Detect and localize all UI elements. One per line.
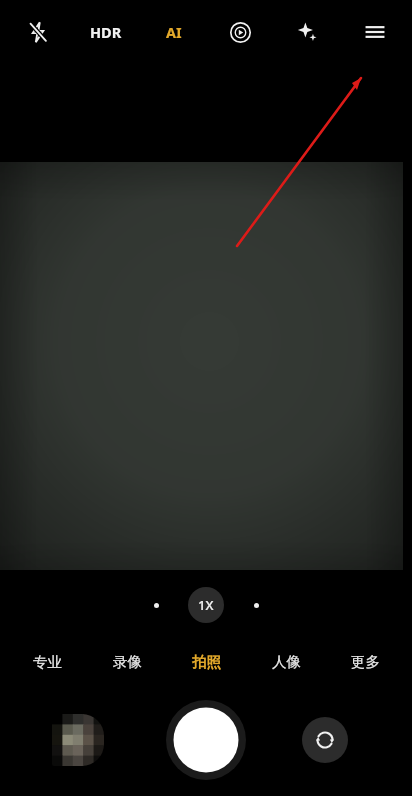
staticText: HDR xyxy=(90,22,122,42)
staticText: 录像 xyxy=(113,653,142,671)
button[interactable]: 1X xyxy=(188,587,224,623)
staticText: 1X xyxy=(198,596,214,614)
staticText: 拍照 xyxy=(192,653,221,671)
staticText: 更多 xyxy=(351,653,380,671)
button[interactable]: Motion photo xyxy=(207,0,274,64)
button[interactable]: 拍照 xyxy=(175,642,237,682)
button[interactable]: Switch camera xyxy=(302,717,348,763)
button[interactable]: HDR xyxy=(72,0,140,64)
button[interactable]: AI xyxy=(140,0,207,64)
button[interactable]: Zoom out xyxy=(145,594,167,616)
button[interactable]: Take photo xyxy=(166,700,246,780)
button[interactable]: Filters xyxy=(274,0,341,64)
staticText: AI xyxy=(166,22,182,42)
button[interactable]: 专业 xyxy=(16,642,78,682)
staticText: 人像 xyxy=(272,653,301,671)
button[interactable]: 录像 xyxy=(96,642,158,682)
button[interactable]: 人像 xyxy=(255,642,317,682)
staticText: 专业 xyxy=(33,653,62,671)
button[interactable]: Zoom in xyxy=(245,594,267,616)
button[interactable]: Gallery xyxy=(52,714,104,766)
button[interactable]: Menu xyxy=(341,0,408,64)
button[interactable]: Flash off xyxy=(4,0,72,64)
button[interactable]: 更多 xyxy=(334,642,396,682)
